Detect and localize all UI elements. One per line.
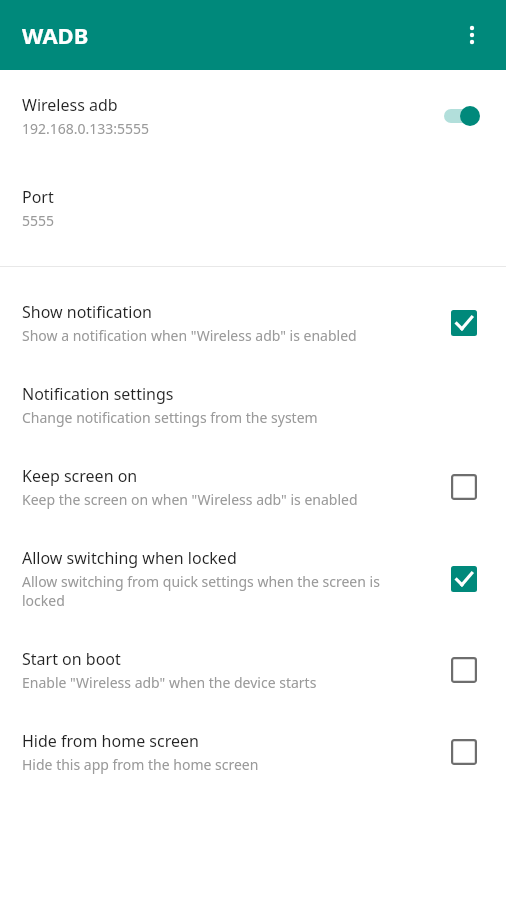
staticText: Port	[22, 186, 54, 208]
staticText: WADB	[22, 20, 89, 50]
button[interactable]: Notification settings	[0, 369, 506, 441]
button[interactable]: Wireless adb	[0, 80, 506, 152]
button[interactable]: Allow switching when locked	[0, 533, 506, 624]
staticText: Wireless adb	[22, 94, 118, 116]
staticText: Notification settings	[22, 383, 174, 405]
button[interactable]: Start on boot	[0, 634, 506, 706]
staticText: Keep screen on	[22, 465, 138, 487]
staticText: Allow switching from quick settings when…	[22, 572, 426, 610]
button[interactable]: Hide from home screen	[0, 716, 506, 788]
staticText: 5555	[22, 211, 55, 230]
staticText: Allow switching when locked	[22, 547, 237, 569]
button[interactable]: Keep screen on	[0, 451, 506, 523]
button[interactable]: Port	[0, 172, 506, 244]
staticText: Show a notification when "Wireless adb" …	[22, 326, 357, 345]
staticText: 192.168.0.133:5555	[22, 119, 150, 138]
staticText: Start on boot	[22, 648, 121, 670]
staticText: Hide from home screen	[22, 730, 199, 752]
staticText: Keep the screen on when "Wireless adb" i…	[22, 490, 358, 509]
staticText: Enable "Wireless adb" when the device st…	[22, 673, 317, 692]
staticText: Show notification	[22, 301, 153, 323]
staticText: Change notification settings from the sy…	[22, 408, 318, 427]
button[interactable]: Show notification	[0, 287, 506, 359]
staticText: Hide this app from the home screen	[22, 755, 259, 774]
button[interactable]: More options	[450, 13, 494, 57]
